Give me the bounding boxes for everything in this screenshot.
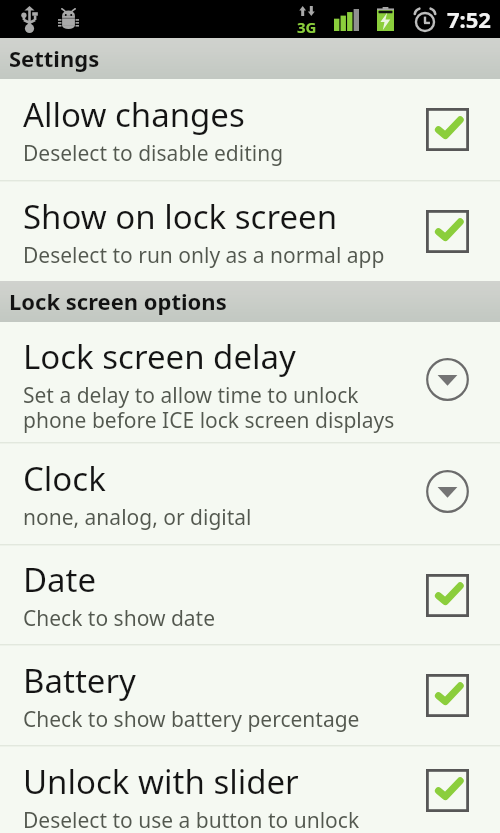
staticText: Lock screen options — [9, 286, 227, 316]
other: Open options — [426, 358, 469, 401]
staticText: Battery — [23, 658, 136, 703]
staticText: Check to show date — [23, 604, 216, 633]
staticText: Deselect to run only as a normal app — [23, 241, 385, 270]
button[interactable]: Battery — [0, 646, 500, 745]
button[interactable]: Show on lock screen — [0, 182, 500, 281]
staticText: Show on lock screen — [23, 194, 338, 239]
other: Open options — [426, 470, 469, 513]
staticText: Unlock with slider — [23, 759, 299, 804]
staticText: Set a delay to allow time to unlock phon… — [23, 381, 395, 434]
other: Checkbox — [426, 674, 469, 717]
staticText: Check to show battery percentage — [23, 705, 360, 734]
staticText: none, analog, or digital — [23, 503, 252, 532]
button[interactable]: Date — [0, 546, 500, 644]
staticText: 7:52 — [447, 4, 491, 34]
other: Checkbox — [426, 574, 469, 617]
button[interactable]: Clock — [0, 444, 500, 544]
button[interactable]: Lock screen delay — [0, 322, 500, 442]
other: Checkbox — [426, 769, 469, 812]
staticText: Clock — [23, 456, 106, 501]
staticText: Settings — [9, 43, 100, 73]
staticText: Allow changes — [23, 92, 245, 137]
button[interactable]: Allow changes — [0, 79, 500, 180]
other: Checkbox — [426, 108, 469, 151]
staticText: Date — [23, 557, 97, 602]
staticText: 3G — [297, 17, 317, 37]
other: Checkbox — [426, 210, 469, 253]
staticText: Lock screen delay — [23, 334, 296, 379]
staticText: Deselect to use a button to unlock — [23, 806, 360, 833]
button[interactable]: Unlock with slider — [0, 747, 500, 833]
staticText: Deselect to disable editing — [23, 139, 284, 168]
